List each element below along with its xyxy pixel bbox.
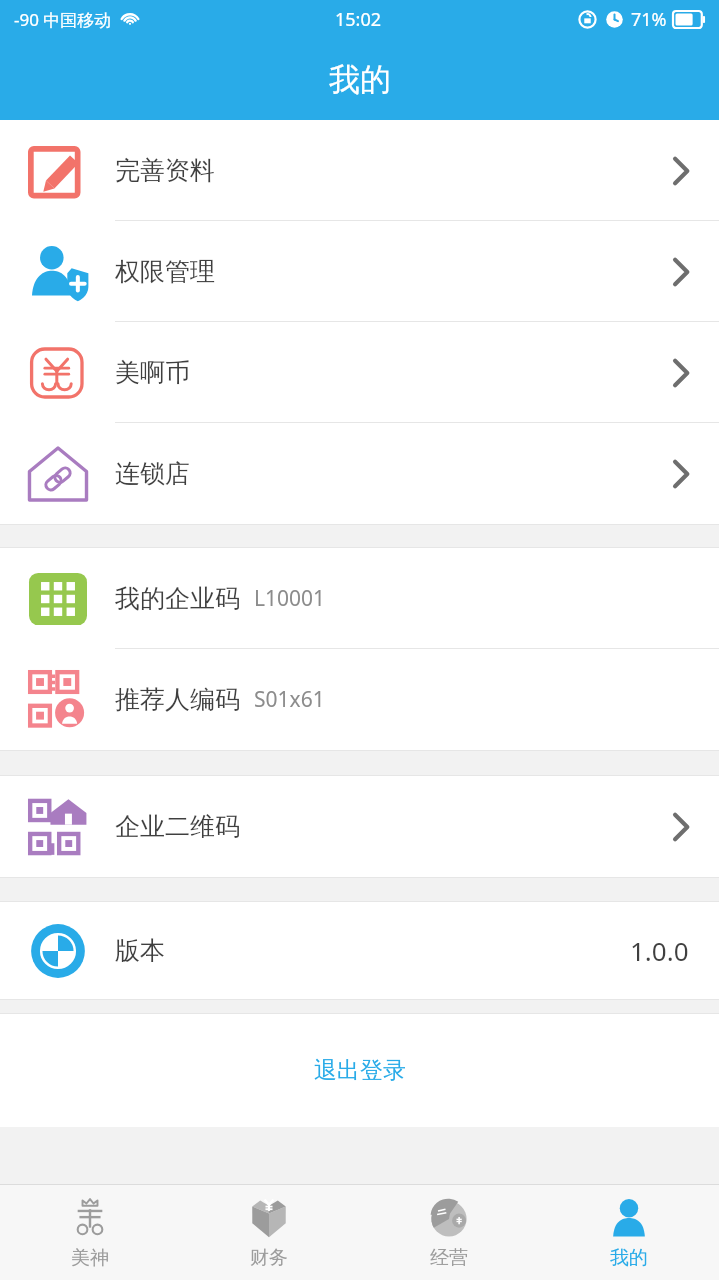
staticText: -90 中国移动 bbox=[14, 8, 112, 31]
staticText: 美啊币 bbox=[115, 357, 190, 388]
button[interactable]: 经营 bbox=[359, 1185, 539, 1280]
staticText: 15:02 bbox=[335, 7, 382, 32]
button[interactable]: 我的 bbox=[539, 1185, 719, 1280]
staticText: 我的 bbox=[329, 60, 391, 99]
button[interactable]: 我的企业码 bbox=[0, 548, 719, 649]
button[interactable]: 美神 bbox=[0, 1185, 179, 1280]
other: 推荐人编码 bbox=[29, 671, 87, 729]
staticText: 退出登录 bbox=[314, 1056, 406, 1085]
other: 版本 bbox=[30, 923, 86, 979]
button[interactable]: 完善资料 bbox=[0, 120, 719, 221]
staticText: S01x61 bbox=[254, 685, 325, 714]
button[interactable]: 权限管理 bbox=[0, 221, 719, 322]
staticText: 连锁店 bbox=[115, 458, 190, 489]
staticText: 经营 bbox=[430, 1246, 468, 1270]
staticText: 美神 bbox=[71, 1246, 109, 1270]
other: 连锁店 bbox=[27, 443, 89, 505]
staticText: L10001 bbox=[254, 584, 326, 613]
button[interactable]: 财务 bbox=[179, 1185, 359, 1280]
other: 企业二维码 bbox=[29, 798, 87, 856]
staticText: 权限管理 bbox=[115, 256, 215, 287]
other: 我的企业码 bbox=[29, 570, 87, 628]
staticText: 财务 bbox=[250, 1246, 288, 1270]
other: 权限管理 bbox=[27, 241, 89, 303]
staticText: 推荐人编码 bbox=[115, 684, 240, 715]
staticText: 1.0.0 bbox=[630, 933, 689, 968]
staticText: 企业二维码 bbox=[115, 811, 240, 842]
staticText: 我的企业码 bbox=[115, 583, 240, 614]
staticText: 完善资料 bbox=[115, 155, 215, 186]
staticText: 版本 bbox=[115, 935, 165, 966]
button[interactable]: 版本 bbox=[0, 902, 719, 999]
button[interactable]: 推荐人编码 bbox=[0, 649, 719, 750]
button[interactable]: 美啊币 bbox=[0, 322, 719, 423]
other: 完善资料 bbox=[28, 141, 88, 201]
button[interactable]: 连锁店 bbox=[0, 423, 719, 524]
button[interactable]: 企业二维码 bbox=[0, 776, 719, 877]
staticText: 71% bbox=[631, 7, 667, 32]
other: 美啊币 bbox=[28, 343, 88, 403]
staticText: 我的 bbox=[610, 1246, 648, 1270]
button[interactable]: 退出登录 bbox=[0, 1014, 719, 1127]
